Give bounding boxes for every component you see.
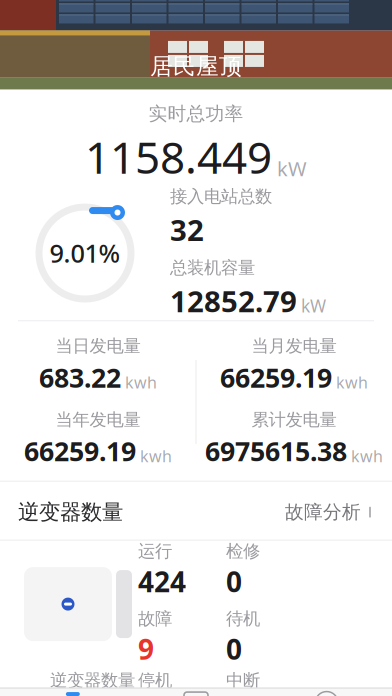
staticText: 当日发电量 bbox=[55, 335, 140, 357]
staticText: 1158.449 bbox=[85, 127, 272, 186]
staticText: 当年发电量 bbox=[55, 409, 140, 430]
staticText: 12852.79 bbox=[170, 281, 297, 320]
button[interactable]: 首页 bbox=[0, 686, 131, 696]
staticText: 运行 bbox=[138, 541, 172, 562]
staticText: 接入电站总数 bbox=[170, 186, 272, 207]
staticText: kW bbox=[277, 155, 307, 182]
button[interactable]: 故障分析 bbox=[285, 495, 374, 530]
staticText: 32 bbox=[170, 210, 204, 249]
staticText: kwh bbox=[140, 445, 172, 467]
staticText: 待机 bbox=[226, 608, 260, 629]
staticText: 故障分析 bbox=[285, 501, 361, 524]
staticText: 9.01% bbox=[49, 236, 120, 270]
staticText: 总装机容量 bbox=[170, 257, 255, 278]
staticText: 66259.19 bbox=[24, 433, 136, 469]
staticText: 故障 bbox=[138, 608, 172, 629]
staticText: 9 bbox=[138, 630, 154, 668]
staticText: 停机 bbox=[138, 670, 172, 691]
staticText: 0 bbox=[226, 630, 242, 668]
staticText: 424 bbox=[138, 563, 186, 600]
staticText: 66259.19 bbox=[220, 360, 332, 395]
staticText: 当月发电量 bbox=[251, 335, 336, 357]
staticText: kwh bbox=[336, 372, 368, 393]
staticText: 683.22 bbox=[39, 360, 121, 395]
button[interactable]: 监控 bbox=[131, 686, 261, 696]
staticText: 逆变器数量 bbox=[18, 499, 123, 525]
staticText: 6975615.38 bbox=[205, 433, 347, 469]
staticText: 中断 bbox=[226, 670, 260, 691]
staticText: 0 bbox=[226, 563, 242, 600]
staticText: kW bbox=[301, 294, 326, 317]
staticText: 居民屋顶 bbox=[150, 53, 242, 80]
staticText: 实时总功率 bbox=[148, 102, 243, 125]
staticText: 逆变器数量 bbox=[50, 670, 135, 691]
button[interactable]: 我的 bbox=[261, 686, 392, 696]
staticText: kwh bbox=[351, 445, 383, 467]
staticText: 检修 bbox=[226, 541, 260, 562]
staticText: 累计发电量 bbox=[251, 409, 336, 430]
staticText: kwh bbox=[125, 372, 157, 393]
